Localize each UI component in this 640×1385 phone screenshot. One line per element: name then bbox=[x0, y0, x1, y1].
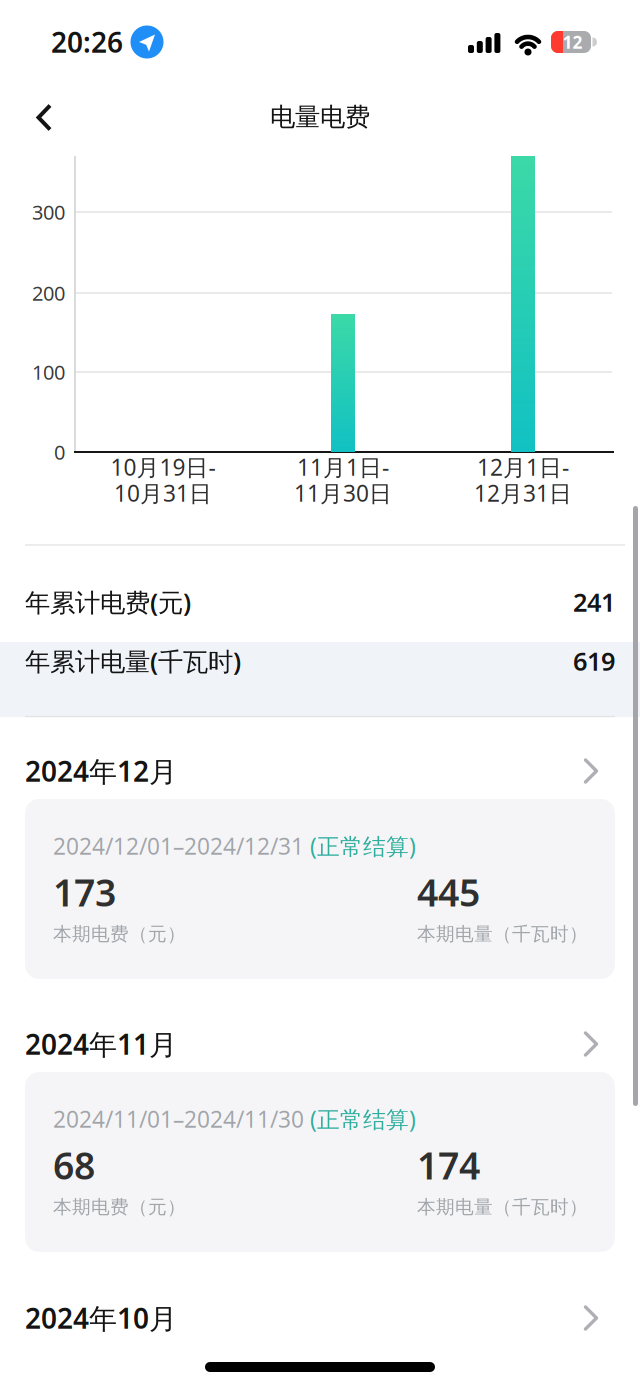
staticText: 241 bbox=[573, 585, 615, 619]
staticText: 0 bbox=[54, 439, 65, 465]
staticText: 12 bbox=[562, 30, 582, 53]
staticText: 10月31日 bbox=[114, 478, 212, 508]
staticText: 年累计电费(元) bbox=[25, 585, 191, 619]
staticText: 2024年10月 bbox=[25, 1299, 177, 1337]
staticText: 445 bbox=[417, 867, 480, 917]
staticText: 本期电量（千瓦时） bbox=[417, 922, 588, 945]
staticText: 11月1日- bbox=[297, 452, 389, 482]
staticText: 11月30日 bbox=[294, 478, 392, 508]
staticText: 100 bbox=[32, 359, 65, 385]
staticText: (正常结算) bbox=[310, 831, 416, 861]
staticText: 619 bbox=[573, 644, 615, 678]
staticText: 2024年11月 bbox=[25, 1025, 177, 1063]
staticText: 2024年12月 bbox=[25, 752, 177, 790]
staticText: 本期电费（元） bbox=[53, 922, 186, 945]
staticText: 2024/11/01–2024/11/30 bbox=[53, 1104, 304, 1134]
staticText: 12月1日- bbox=[477, 452, 569, 482]
staticText: 68 bbox=[53, 1140, 95, 1190]
staticText: 2024/12/01–2024/12/31 bbox=[53, 831, 304, 861]
staticText: 本期电量（千瓦时） bbox=[417, 1195, 588, 1218]
staticText: 174 bbox=[417, 1140, 480, 1190]
staticText: 年累计电量(千瓦时) bbox=[25, 644, 241, 678]
staticText: 300 bbox=[32, 199, 65, 225]
staticText: 12月31日 bbox=[474, 478, 572, 508]
staticText: 本期电费（元） bbox=[53, 1195, 186, 1218]
staticText: 200 bbox=[32, 280, 65, 306]
staticText: 20:26 bbox=[51, 23, 123, 61]
staticText: 电量电费 bbox=[270, 101, 370, 132]
staticText: 173 bbox=[53, 867, 116, 917]
staticText: 10月19日- bbox=[110, 452, 215, 482]
staticText: (正常结算) bbox=[310, 1104, 416, 1134]
